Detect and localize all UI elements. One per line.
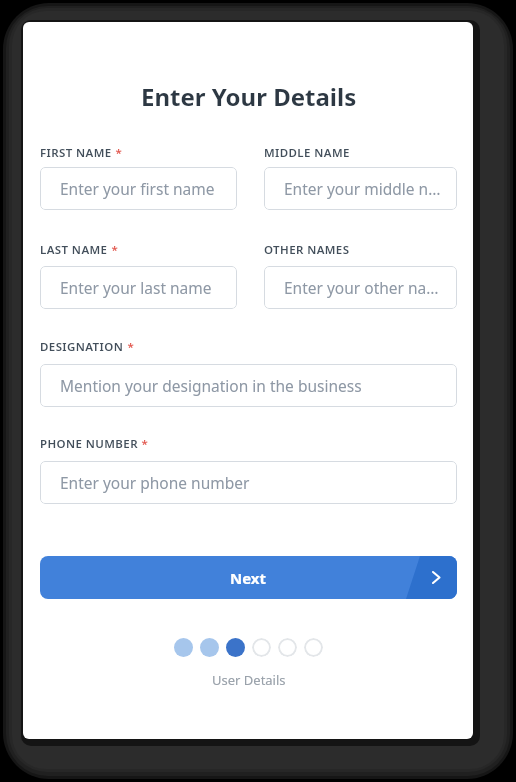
staticText: * bbox=[138, 436, 149, 452]
staticText: OTHER NAMES bbox=[264, 242, 350, 258]
button[interactable]: Mention your designation in the business bbox=[40, 364, 457, 407]
staticText: Enter your phone number bbox=[60, 472, 250, 493]
button[interactable]: Enter your other names bbox=[264, 266, 457, 309]
staticText: Next bbox=[230, 568, 267, 588]
button[interactable] bbox=[174, 638, 193, 657]
staticText: Enter Your Details bbox=[141, 80, 357, 113]
staticText: Enter your last name bbox=[60, 277, 212, 298]
button[interactable] bbox=[200, 638, 219, 657]
button[interactable] bbox=[304, 638, 323, 657]
button[interactable] bbox=[252, 638, 271, 657]
staticText: MIDDLE NAME bbox=[264, 145, 350, 161]
staticText: Enter your other names bbox=[284, 277, 447, 298]
staticText: * bbox=[112, 145, 123, 161]
staticText: User Details bbox=[212, 671, 286, 689]
staticText: LAST NAME bbox=[40, 242, 108, 258]
staticText: * bbox=[124, 339, 135, 355]
button[interactable]: Enter your phone number bbox=[40, 461, 457, 504]
staticText: FIRST NAME bbox=[40, 145, 112, 161]
staticText: Mention your designation in the business bbox=[60, 375, 362, 396]
staticText: Enter your first name bbox=[60, 178, 215, 199]
button[interactable]: Enter your first name bbox=[40, 167, 237, 210]
button[interactable] bbox=[226, 638, 245, 657]
staticText: PHONE NUMBER bbox=[40, 436, 138, 452]
staticText: DESIGNATION bbox=[40, 339, 124, 355]
button[interactable]: Enter your last name bbox=[40, 266, 237, 309]
button[interactable]: Next bbox=[40, 556, 457, 599]
button[interactable] bbox=[278, 638, 297, 657]
staticText: * bbox=[108, 242, 119, 258]
button[interactable]: Enter your middle name bbox=[264, 167, 457, 210]
staticText: Enter your middle name bbox=[284, 178, 447, 199]
